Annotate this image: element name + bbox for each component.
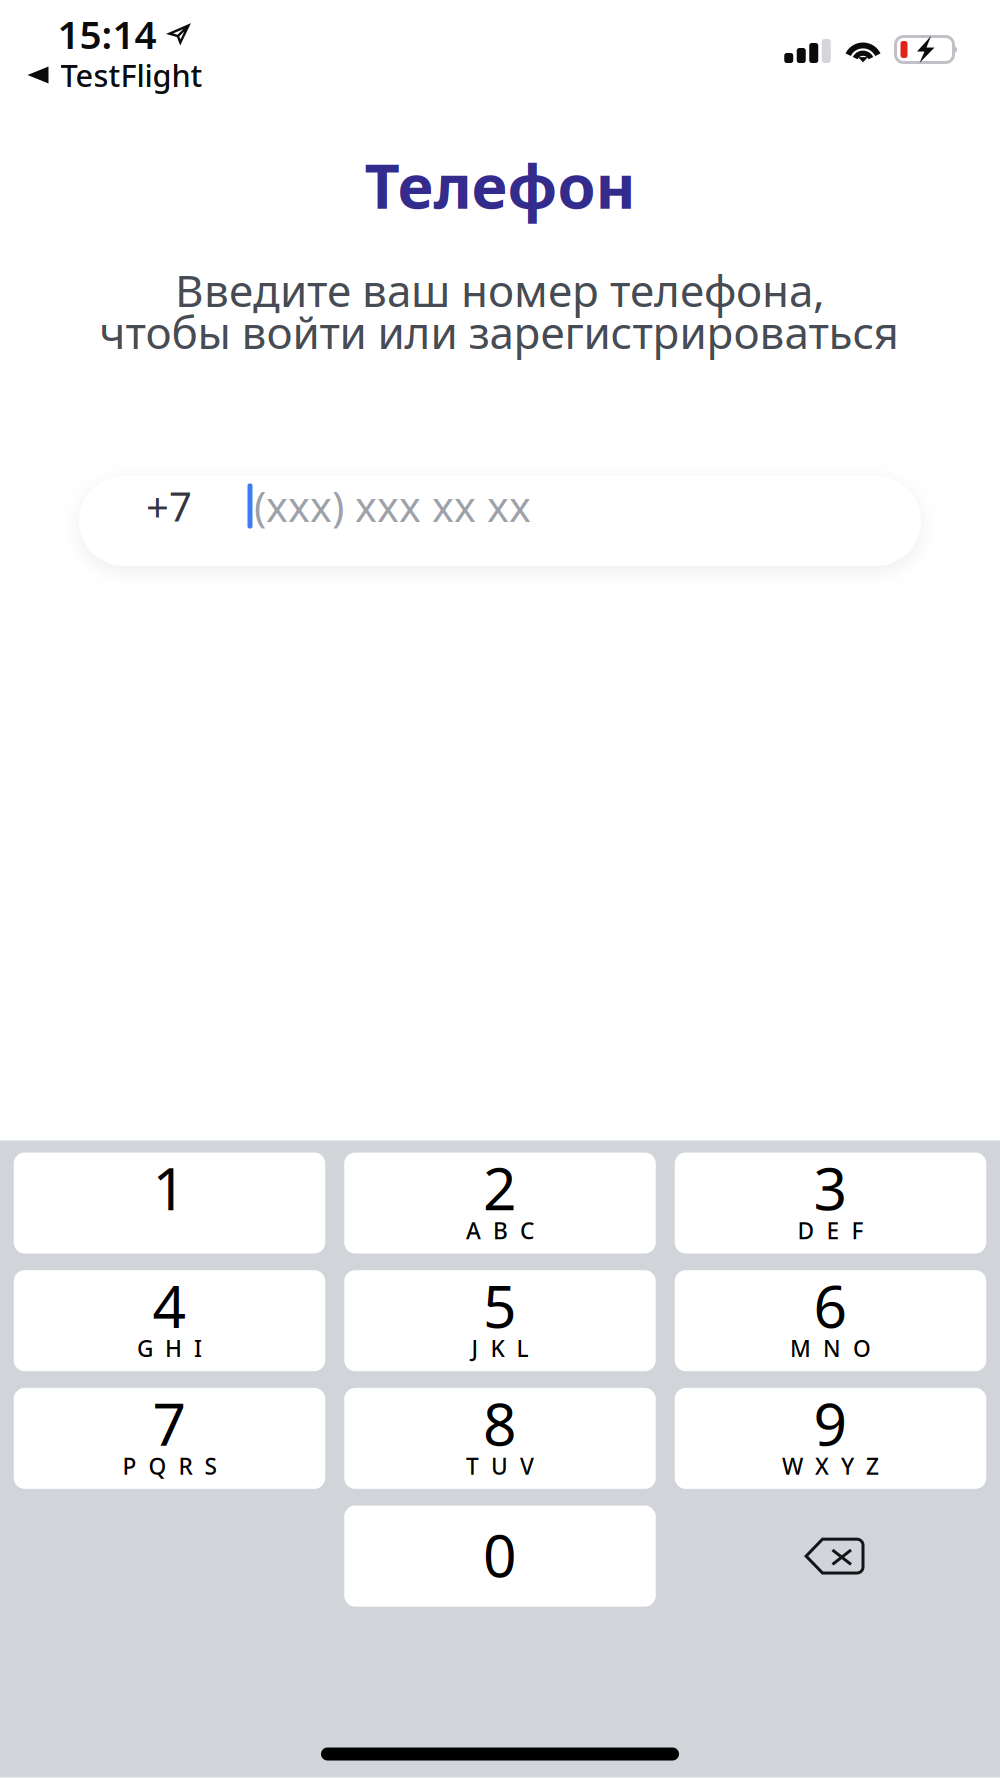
- button[interactable]: 4: [14, 1270, 325, 1371]
- staticText: 0: [483, 1516, 517, 1593]
- staticText: 15:14: [57, 8, 156, 60]
- staticText: W X Y Z: [782, 1451, 879, 1481]
- button[interactable]: 3: [675, 1152, 986, 1253]
- staticText: (xxx) xxx xx xx: [254, 479, 531, 533]
- staticText: чтобы войти или зарегистрироваться: [99, 303, 898, 361]
- staticText: A B C: [466, 1215, 534, 1245]
- button[interactable]: 1: [14, 1152, 325, 1253]
- staticText: 8: [483, 1384, 517, 1462]
- staticText: 4: [152, 1266, 186, 1344]
- staticText: 6: [813, 1266, 847, 1344]
- button[interactable]: 5: [344, 1270, 656, 1371]
- button[interactable]: 8: [344, 1388, 656, 1489]
- staticText: +7: [146, 479, 192, 532]
- staticText: P Q R S: [122, 1451, 216, 1481]
- button[interactable]: 6: [675, 1270, 986, 1371]
- button[interactable]: 7: [14, 1388, 325, 1489]
- staticText: M N O: [790, 1333, 871, 1363]
- staticText: Телефон: [364, 144, 635, 226]
- staticText: Введите ваш номер телефона,: [175, 261, 825, 319]
- staticText: T U V: [466, 1451, 534, 1481]
- staticText: 7: [152, 1384, 186, 1462]
- staticText: 9: [813, 1384, 847, 1462]
- staticText: G H I: [137, 1333, 202, 1363]
- staticText: 2: [483, 1148, 517, 1226]
- staticText: J K L: [471, 1333, 528, 1363]
- button[interactable]: 9: [675, 1388, 986, 1489]
- staticText: D E F: [797, 1215, 863, 1245]
- button[interactable]: TestFlight: [19, 49, 210, 101]
- staticText: 3: [813, 1148, 847, 1226]
- button[interactable]: 2: [344, 1152, 656, 1253]
- staticText: 5: [483, 1266, 517, 1344]
- staticText: 1: [152, 1148, 186, 1226]
- button[interactable]: Delete: [675, 1506, 986, 1607]
- button[interactable]: 0: [344, 1506, 656, 1607]
- staticText: TestFlight: [60, 55, 202, 95]
